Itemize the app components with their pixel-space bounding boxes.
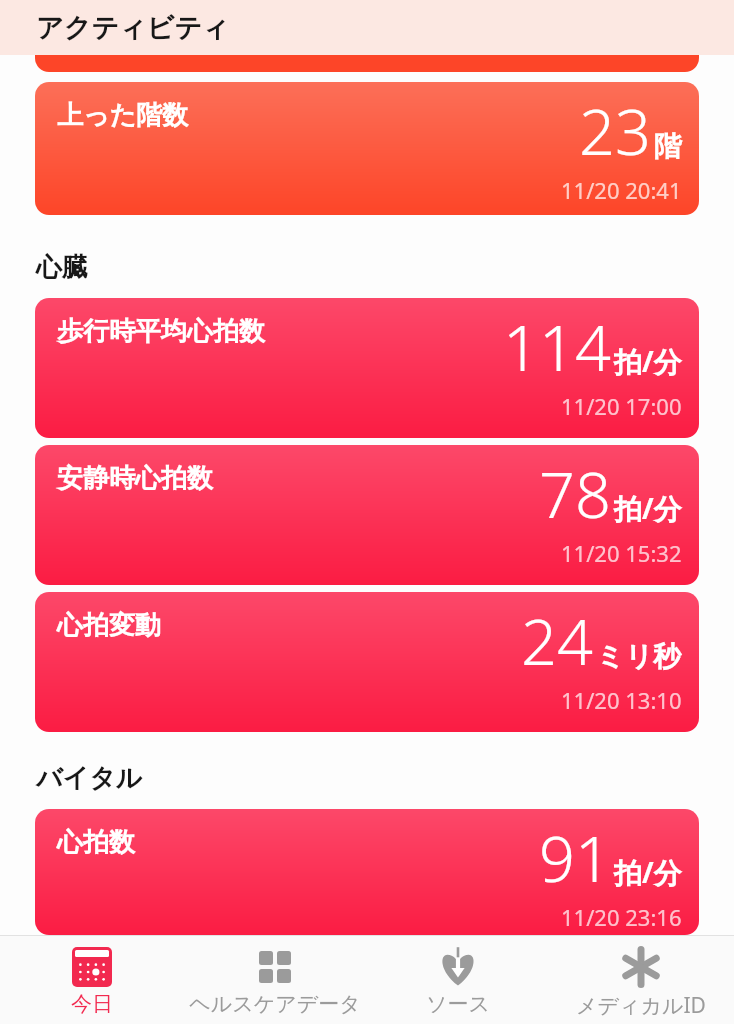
staticText: バイタル <box>36 762 143 795</box>
button[interactable]: 安静時心拍数 <box>35 445 699 585</box>
staticText: 11/20 20:41 <box>561 175 682 205</box>
staticText: 11/20 23:16 <box>561 902 682 932</box>
staticText: 歩行時平均心拍数 <box>57 315 265 348</box>
staticText: 拍/分 <box>614 853 682 891</box>
button[interactable]: メディカルID <box>549 936 732 1024</box>
staticText: 安静時心拍数 <box>57 462 213 495</box>
staticText: 11/20 17:00 <box>561 391 682 421</box>
staticText: 拍/分 <box>614 489 682 527</box>
staticText: 心臓 <box>36 251 88 284</box>
staticText: 11/20 13:10 <box>561 685 682 715</box>
staticText: 階 <box>654 129 682 164</box>
staticText: 心拍変動 <box>57 609 161 642</box>
button[interactable]: 上った階数 <box>35 82 699 215</box>
staticText: 91 <box>539 815 611 901</box>
button[interactable]: 今日 <box>0 936 183 1024</box>
button[interactable] <box>35 55 699 72</box>
button[interactable]: ヘルスケアデータ <box>183 936 366 1024</box>
staticText: アクティビティ <box>36 11 230 45</box>
staticText: ヘルスケアデータ <box>189 991 361 1017</box>
button[interactable]: ソース <box>366 936 549 1024</box>
staticText: 上った階数 <box>57 99 189 132</box>
staticText: ミリ秒 <box>596 639 682 674</box>
staticText: メディカルID <box>576 991 706 1020</box>
staticText: 今日 <box>71 991 113 1017</box>
staticText: 24 <box>521 598 593 684</box>
staticText: 78 <box>539 451 611 537</box>
button[interactable]: 歩行時平均心拍数 <box>35 298 699 438</box>
staticText: 11/20 15:32 <box>561 538 682 568</box>
button[interactable]: 心拍変動 <box>35 592 699 732</box>
staticText: 114 <box>503 304 611 390</box>
staticText: 拍/分 <box>614 342 682 380</box>
staticText: 23 <box>579 88 651 174</box>
staticText: 心拍数 <box>57 826 135 859</box>
staticText: ソース <box>426 991 490 1017</box>
button[interactable]: 心拍数 <box>35 809 699 935</box>
